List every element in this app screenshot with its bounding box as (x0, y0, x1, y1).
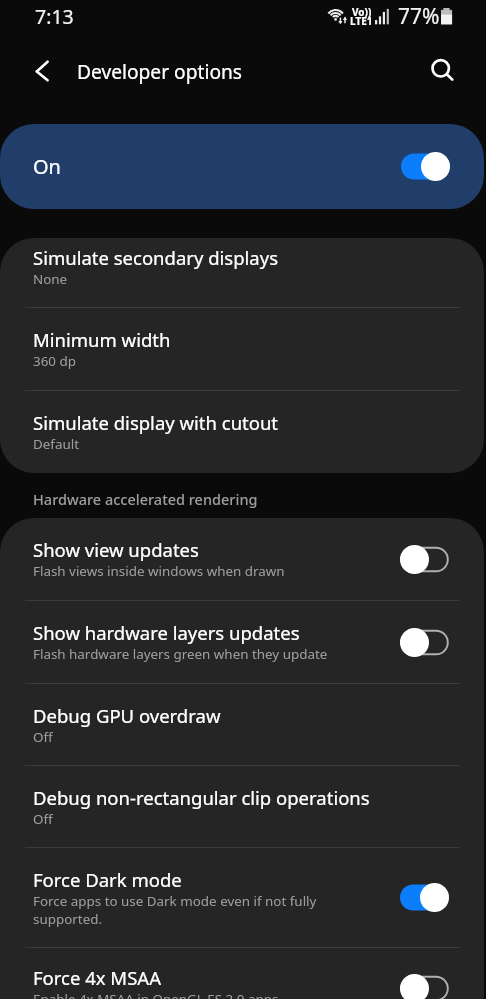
staticText: Vo)) (352, 5, 372, 19)
staticText: None (33, 270, 68, 288)
button[interactable]: Force Dark mode (0, 848, 484, 948)
button[interactable]: Debug non-rectangular clip operations (0, 766, 484, 848)
staticText: Developer options (77, 58, 243, 84)
button[interactable]: Simulate secondary displays (0, 238, 484, 308)
staticText: Flash views inside windows when drawn (33, 562, 285, 580)
staticText: Enable 4x MSAA in OpenGL ES 2.0 apps (33, 990, 279, 999)
button[interactable]: Simulate display with cutout (0, 391, 484, 473)
staticText: Flash hardware layers green when they up… (33, 645, 328, 663)
staticText: Force apps to use Dark mode even if not … (33, 892, 340, 928)
staticText: Minimum width (33, 327, 171, 352)
staticText: Default (33, 435, 80, 453)
button[interactable]: Minimum width (0, 308, 484, 391)
staticText: Simulate secondary displays (33, 245, 279, 270)
staticText: 77% (398, 2, 440, 31)
button[interactable]: Navigate up (18, 46, 66, 94)
button[interactable]: On (0, 124, 484, 209)
button[interactable]: Search (418, 46, 466, 94)
staticText: Force 4x MSAA (33, 965, 161, 990)
staticText: Force Dark mode (33, 867, 182, 892)
staticText: 7:13 (35, 3, 74, 30)
staticText: On (33, 153, 61, 180)
button[interactable]: Show hardware layers updates (0, 601, 484, 684)
staticText: Off (33, 810, 53, 828)
button[interactable]: Show view updates (0, 518, 484, 601)
staticText: Show view updates (33, 537, 199, 562)
staticText: Hardware accelerated rendering (33, 489, 258, 509)
staticText: Debug GPU overdraw (33, 703, 221, 728)
staticText: LTE1 (350, 14, 373, 28)
staticText: Debug non-rectangular clip operations (33, 785, 370, 810)
staticText: Simulate display with cutout (33, 410, 279, 435)
staticText: 360 dp (33, 352, 76, 370)
staticText: Show hardware layers updates (33, 620, 300, 645)
staticText: Off (33, 728, 53, 746)
button[interactable]: Debug GPU overdraw (0, 684, 484, 766)
button[interactable]: Force 4x MSAA (0, 948, 484, 999)
